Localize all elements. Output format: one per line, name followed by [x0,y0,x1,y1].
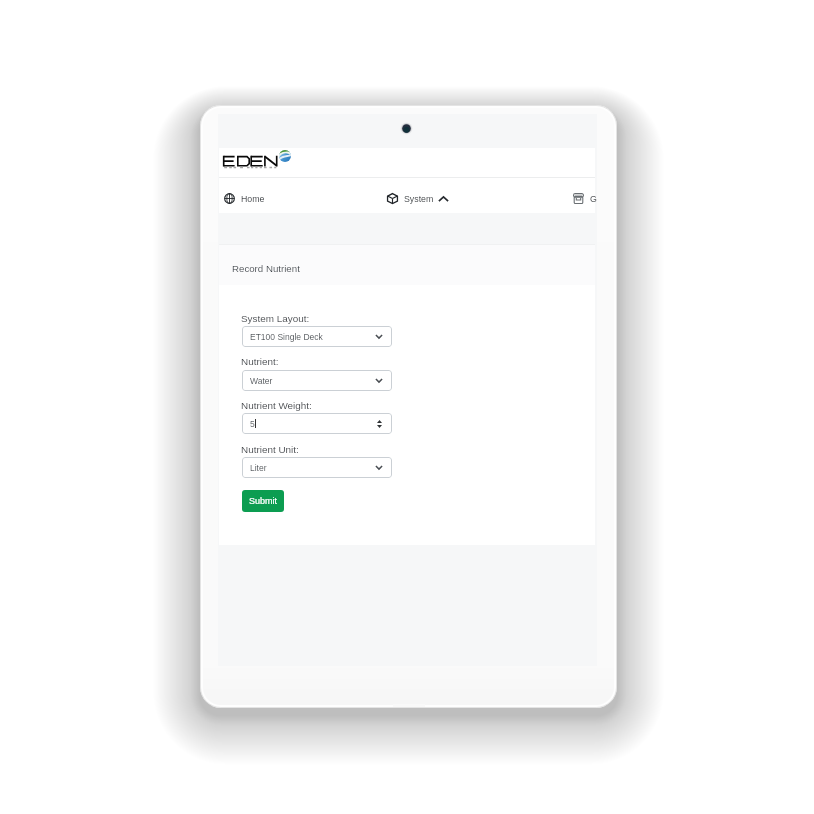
staticText: 5 [250,419,255,428]
staticText: ET100 Single Deck [250,332,323,341]
button[interactable]: Liter [242,457,392,478]
other: Increment or decrement [377,420,382,428]
button[interactable]: ET100 Single Deck [242,326,392,347]
button[interactable]: Home [219,187,273,210]
staticText: Home [241,194,265,204]
button[interactable]: Grow log [555,187,599,210]
button[interactable]: 5 [242,413,392,434]
staticText: Liter [250,463,267,472]
other: Grow log [573,193,584,204]
staticText: Submit [249,496,278,506]
staticText: Water [250,376,273,385]
staticText: System [404,194,434,204]
button[interactable]: Submit [242,490,284,512]
button[interactable]: System [371,187,457,210]
other: Collapse System menu [438,196,449,202]
staticText: System Layout: [241,313,310,324]
staticText: Nutrient Unit: [241,444,299,455]
button[interactable] [221,150,295,172]
other: Open dropdown [375,378,383,383]
staticText: Record Nutrient [232,263,300,274]
staticText: Nutrient Weight: [241,400,312,411]
staticText: G [590,194,597,204]
button[interactable]: Water [242,370,392,391]
other: Open dropdown [375,465,383,470]
other: Open dropdown [375,334,383,339]
staticText: Nutrient: [241,356,279,367]
